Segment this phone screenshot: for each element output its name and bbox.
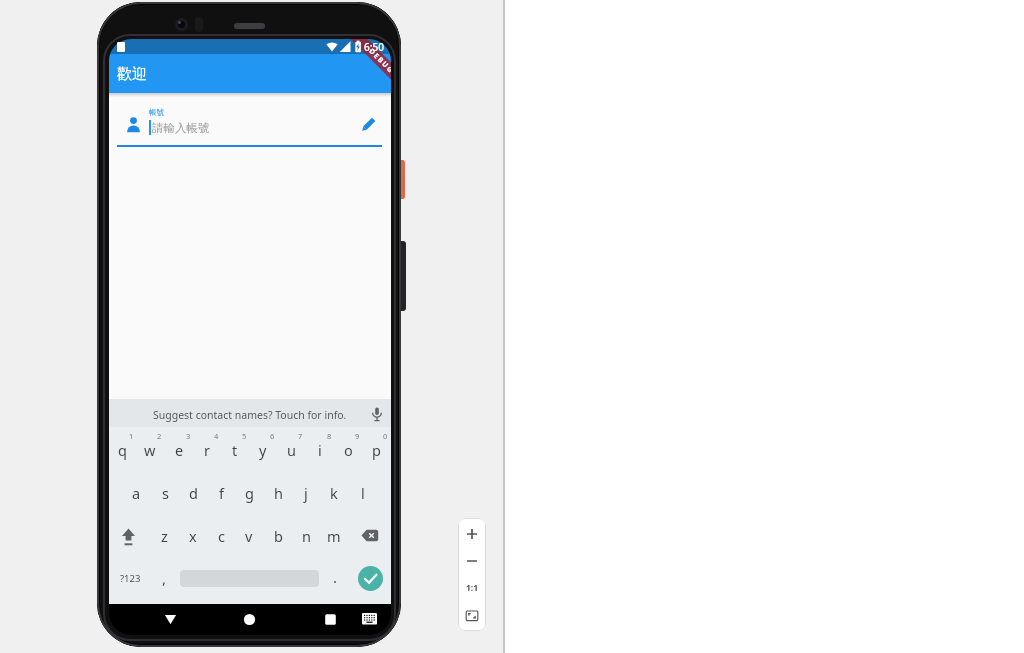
button[interactable]: x [179,526,207,546]
button[interactable]: d [179,483,207,503]
staticText: 1:1 [466,582,479,594]
button[interactable]: y [249,440,277,460]
staticText: 1 [129,431,134,441]
button[interactable] [458,575,486,601]
staticText: 5 [242,431,247,441]
staticText: 0 [383,431,388,441]
button[interactable] [160,609,181,630]
button[interactable]: i [306,440,334,460]
button[interactable]: n [292,526,320,546]
staticText: 帳號 [149,108,164,117]
button[interactable]: a [122,483,150,503]
button[interactable] [361,529,379,542]
staticText: 請輸入帳號 [152,121,210,135]
button[interactable] [458,548,486,574]
staticText: d [189,483,198,503]
staticText: y [259,440,267,460]
staticText: Suggest contact names? Touch for info. [153,408,347,422]
staticText: q [118,440,127,460]
button[interactable]: Suggest contact names? Touch for info. [120,403,380,427]
staticText: b [274,526,283,546]
button[interactable]: r [193,440,221,460]
button[interactable]: t [221,440,249,460]
staticText: . [333,567,338,587]
button[interactable]: . [328,566,343,588]
staticText: f [219,483,224,503]
staticText: n [302,526,311,546]
staticText: , [162,568,167,588]
button[interactable]: c [207,526,235,546]
staticText: i [318,440,322,460]
staticText: t [232,440,238,460]
button[interactable]: l [349,483,377,503]
staticText: c [218,526,225,546]
button[interactable] [458,521,486,547]
staticText: l [361,483,365,503]
staticText: u [287,440,296,460]
button[interactable]: w [136,440,164,460]
button[interactable]: e [165,440,193,460]
button[interactable]: q [108,440,136,460]
button[interactable]: g [235,483,263,503]
button[interactable]: , [157,567,172,589]
staticText: 6 [270,431,275,441]
button[interactable]: z [150,526,178,546]
staticText: k [330,483,338,503]
staticText: h [274,483,283,503]
button[interactable] [458,602,486,628]
staticText: 8 [327,431,332,441]
staticText: g [245,483,254,503]
button[interactable]: p [362,440,390,460]
staticText: 歡迎 [117,65,147,84]
staticText: 3 [186,431,191,441]
button[interactable] [120,527,137,547]
staticText: 7 [298,431,303,441]
button[interactable] [371,407,383,423]
button[interactable]: o [334,440,362,460]
button[interactable] [320,609,341,630]
staticText: 2 [157,431,162,441]
button[interactable]: u [277,440,305,460]
staticText: j [304,483,308,503]
button[interactable]: v [235,526,263,546]
staticText: v [245,526,253,546]
staticText: DEBUG [366,46,391,76]
button[interactable] [358,566,383,591]
staticText: s [162,483,169,503]
button[interactable]: h [264,483,292,503]
button[interactable] [239,609,260,630]
staticText: 4 [214,431,219,441]
button[interactable]: f [207,483,235,503]
button[interactable]: k [320,483,348,503]
staticText: a [132,483,141,503]
staticText: m [327,526,341,546]
button[interactable]: s [151,483,179,503]
staticText: r [204,440,210,460]
button[interactable]: m [320,526,348,546]
button[interactable]: ?123 [117,570,143,586]
button[interactable] [362,613,377,625]
staticText: x [189,526,197,546]
button[interactable] [356,112,382,138]
staticText: w [144,440,156,460]
button[interactable] [117,100,349,147]
staticText: p [372,440,381,460]
staticText: 9 [355,431,360,441]
staticText: e [175,440,184,460]
button[interactable]: b [264,526,292,546]
staticText: 6:50 [364,40,384,53]
staticText: ?123 [120,572,141,585]
staticText: o [344,440,353,460]
button[interactable]: j [292,483,320,503]
staticText: z [161,526,168,546]
